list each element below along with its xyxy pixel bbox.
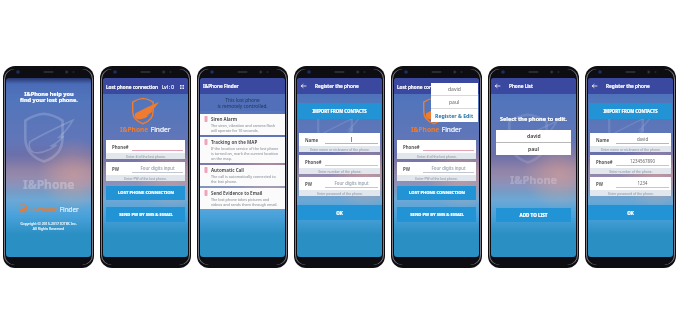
- staticText: 1234567890: [616, 158, 669, 164]
- button[interactable]: OK: [297, 205, 382, 220]
- staticText: Enter password of the phone.: [608, 191, 654, 195]
- staticText: Name: [305, 137, 319, 143]
- button[interactable]: Menu: [178, 83, 185, 90]
- staticText: Four digits input: [325, 180, 378, 186]
- staticText: Finder: [149, 125, 171, 134]
- staticText: OK: [627, 210, 634, 216]
- staticText: Lost phone connection: [397, 84, 450, 90]
- staticText: I&Phone: [23, 176, 75, 192]
- staticText: Enter number of the phone.: [318, 169, 362, 173]
- staticText: Phone#: [596, 159, 613, 165]
- button[interactable]: SEND PW BY SMS & EMAIL: [397, 207, 476, 222]
- staticText: Lvl : 0: [453, 84, 465, 90]
- staticText: IMPORT FROM CONTACTS: [603, 108, 658, 114]
- staticText: Register & Edit: [435, 112, 474, 119]
- button[interactable]: Lost phone connection: [103, 78, 188, 94]
- button[interactable]: Phone#: [106, 140, 185, 159]
- button[interactable]: Register & Edit: [431, 109, 478, 122]
- staticText: 1234: [616, 180, 669, 186]
- staticText: This lost phone is remotely controlled.: [217, 97, 268, 109]
- button[interactable]: Phone#: [397, 140, 476, 159]
- staticText: Enter number of the phone.: [609, 169, 653, 173]
- staticText: Enter PW of the lost phone.: [415, 176, 458, 180]
- button[interactable]: Back: [491, 78, 503, 94]
- staticText: Phone#: [112, 144, 129, 150]
- button[interactable]: SEND PW BY SMS & EMAIL: [106, 207, 185, 222]
- button[interactable]: Name: [590, 133, 671, 152]
- button[interactable]: Name: [299, 133, 380, 152]
- button[interactable]: Back: [588, 78, 673, 94]
- button[interactable]: Phone#: [590, 155, 671, 174]
- staticText: paul: [449, 99, 460, 106]
- staticText: The call is automatically connected to t…: [211, 174, 281, 184]
- staticText: PW: [112, 166, 119, 172]
- staticText: Select the phone to edit.: [491, 115, 576, 122]
- staticText: OK: [336, 210, 343, 216]
- staticText: Name: [596, 137, 610, 143]
- staticText: IMPORT FROM CONTACTS: [312, 108, 367, 114]
- staticText: Four digits input: [423, 165, 474, 171]
- button[interactable]: Back: [297, 78, 309, 94]
- staticText: PW: [403, 166, 410, 172]
- button[interactable]: david: [431, 83, 478, 95]
- staticText: Four digits input: [132, 165, 183, 171]
- button[interactable]: IMPORT FROM CONTACTS: [589, 103, 672, 119]
- button[interactable]: Send Evidence to Email: [204, 190, 281, 207]
- staticText: Phone List: [509, 83, 533, 89]
- staticText: Tracking on the MAP: [211, 139, 258, 145]
- staticText: Enter # of the lost phone.: [126, 154, 166, 158]
- staticText: Lvl : 0: [162, 84, 174, 90]
- button[interactable]: paul: [496, 143, 571, 155]
- button[interactable]: david: [496, 130, 571, 142]
- staticText: The lost phone takes pictures and videos…: [211, 197, 281, 207]
- button[interactable]: Tracking on the MAP: [204, 139, 281, 161]
- staticText: If the location service of the lost phon…: [211, 146, 281, 161]
- button[interactable]: IMPORT FROM CONTACTS: [298, 103, 381, 119]
- staticText: I&Phone: [411, 125, 440, 134]
- button[interactable]: I&Phone Finder: [200, 78, 285, 94]
- button[interactable]: Back: [491, 78, 576, 94]
- button[interactable]: Back: [588, 78, 600, 94]
- button[interactable]: LOST PHONE CONNECTION: [106, 186, 185, 200]
- button[interactable]: Siren Alarm: [204, 116, 281, 133]
- staticText: Phone#: [403, 144, 420, 150]
- staticText: Enter name or nickname of the phone.: [601, 147, 661, 151]
- staticText: LOST PHONE CONNECTION: [409, 190, 465, 196]
- button[interactable]: Automatic Call: [204, 167, 281, 184]
- staticText: Finder: [440, 125, 462, 134]
- button[interactable]: Lost phone connection: [394, 78, 479, 94]
- button[interactable]: PW: [106, 162, 185, 181]
- button[interactable]: Phone#: [299, 155, 380, 174]
- staticText: Lost phone connection: [106, 84, 159, 90]
- staticText: I&Phone: [510, 172, 558, 187]
- staticText: david: [448, 86, 461, 93]
- staticText: david: [527, 133, 541, 140]
- staticText: PW: [305, 181, 312, 187]
- button[interactable]: PW: [397, 162, 476, 181]
- staticText: Phone#: [305, 159, 322, 165]
- staticText: I&Phone help you find your lost phone.: [20, 90, 78, 104]
- staticText: Copyright ⓒ 2015-2017 IOTEK Inc. All Rig…: [20, 221, 77, 231]
- button[interactable]: paul: [431, 96, 478, 108]
- staticText: I&Phone Finder: [203, 83, 239, 89]
- button[interactable]: Back: [297, 78, 382, 94]
- staticText: Enter name or nickname of the phone.: [310, 147, 370, 151]
- staticText: Enter # of the lost phone.: [417, 154, 457, 158]
- button[interactable]: ADD TO LIST: [496, 208, 571, 222]
- staticText: Enter password of the phone.: [317, 191, 363, 195]
- staticText: SEND PW BY SMS & EMAIL: [410, 212, 464, 218]
- button[interactable]: OK: [588, 205, 673, 220]
- staticText: PW: [596, 181, 603, 187]
- staticText: david: [616, 136, 669, 142]
- button[interactable]: PW: [299, 177, 380, 196]
- staticText: The siren, vibration and camera flash wi…: [211, 123, 281, 133]
- staticText: ADD TO LIST: [519, 212, 548, 218]
- button[interactable]: PW: [590, 177, 671, 196]
- button[interactable]: LOST PHONE CONNECTION: [397, 186, 476, 200]
- staticText: paul: [528, 146, 539, 153]
- staticText: I&Phone: [120, 125, 149, 134]
- staticText: Register the phone: [315, 83, 359, 89]
